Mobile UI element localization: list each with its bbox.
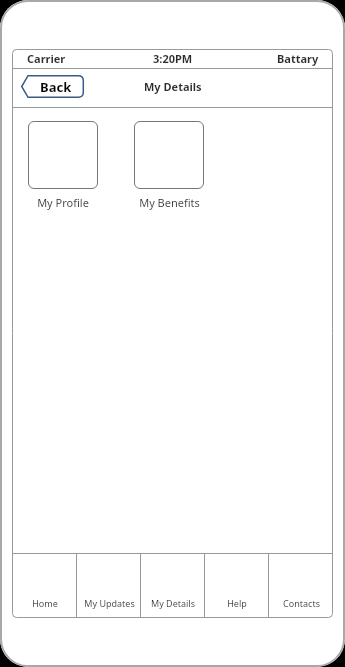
button[interactable]: My Details	[141, 554, 205, 618]
button[interactable]: Back	[21, 75, 84, 98]
staticText: My Updates	[84, 597, 135, 609]
staticText: My Details	[151, 597, 195, 609]
staticText: Back	[40, 78, 72, 96]
button[interactable]: Home	[12, 554, 77, 618]
button[interactable]: My Benefits	[134, 121, 204, 210]
button[interactable]: Contacts	[269, 554, 333, 618]
button[interactable]: Help	[205, 554, 269, 618]
staticText: Contacts	[283, 597, 320, 609]
button[interactable]: My Profile	[28, 121, 98, 210]
staticText: Battary	[277, 51, 319, 66]
staticText: 3:20PM	[153, 51, 193, 66]
staticText: Help	[227, 597, 247, 609]
staticText: Home	[32, 597, 58, 609]
staticText: Carrier	[27, 51, 66, 66]
staticText: My Details	[144, 79, 202, 94]
staticText: My Benefits	[139, 195, 200, 210]
staticText: My Profile	[37, 195, 89, 210]
button[interactable]: My Updates	[77, 554, 141, 618]
